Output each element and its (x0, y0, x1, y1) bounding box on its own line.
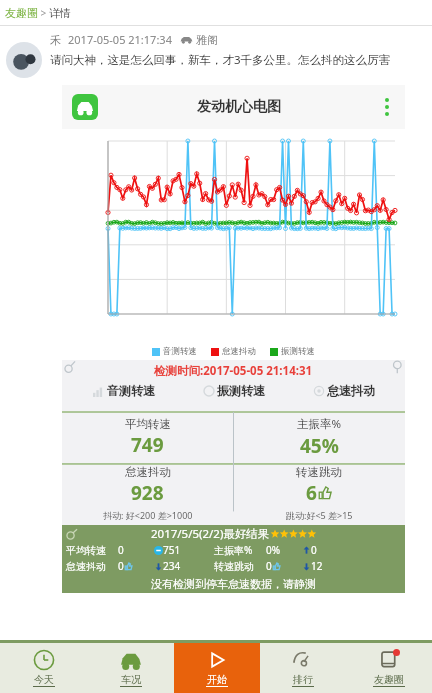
staticText: 请问大神，这是怎么回事，新车，才3千多公里。怎么抖的这么厉害 (50, 52, 391, 68)
staticText: 751 (163, 543, 181, 557)
staticText: 6 (306, 480, 317, 506)
staticText: 0 (118, 543, 124, 557)
staticText: > (38, 6, 49, 20)
staticText: 开始 (207, 673, 227, 686)
staticText: 0 (118, 559, 124, 573)
staticText: 主振率% (297, 416, 342, 432)
staticText: 2017-05-05 21:17:34 (68, 32, 172, 47)
staticText: 振测转速 (217, 383, 265, 398)
staticText: 平均转速 (66, 544, 118, 557)
staticText: 0 (266, 559, 272, 573)
staticText: 今天 (34, 673, 54, 686)
staticText: 0 (311, 543, 317, 557)
staticText: 234 (163, 559, 181, 573)
staticText: 928 (131, 480, 164, 506)
staticText: 排行 (293, 673, 313, 686)
staticText: 749 (131, 432, 164, 458)
button[interactable]: 友趣圈 (346, 643, 432, 693)
staticText: 怠速抖动 (222, 346, 256, 357)
staticText: 跳动:好<5 差>15 (286, 509, 353, 521)
button[interactable]: Avatar (6, 42, 42, 78)
button[interactable]: 开始 (174, 643, 260, 693)
staticText: 0% (266, 543, 281, 557)
staticText: 振测转速 (281, 346, 315, 357)
staticText: 转速跳动 (214, 560, 266, 573)
button[interactable]: 车况 (87, 643, 174, 693)
staticText: 车况 (121, 673, 141, 686)
button[interactable]: More options (379, 98, 395, 116)
staticText: 音测转速 (107, 383, 155, 398)
staticText: 怠速抖动 (125, 465, 171, 479)
button[interactable]: 主振率% (233, 412, 405, 462)
button[interactable]: 怠速抖动 (289, 383, 399, 398)
staticText: 友趣圈 (5, 6, 38, 20)
button[interactable]: 排行 (260, 643, 346, 693)
staticText: 详情 (49, 6, 71, 20)
staticText: 2017/5/5(2/2)最好结果 (151, 526, 270, 542)
staticText: 12 (311, 559, 323, 573)
staticText: 主振率% (214, 543, 266, 557)
button[interactable]: 音测转速 (68, 383, 179, 398)
staticText: 雅阁 (196, 33, 218, 47)
button[interactable]: 今天 (0, 643, 87, 693)
button[interactable]: 转速跳动 (233, 462, 405, 509)
staticText: 怠速抖动 (327, 383, 375, 398)
staticText: 没有检测到停车怠速数据，请静测 (151, 577, 316, 591)
button[interactable]: 振测转速 (179, 383, 289, 398)
button[interactable]: 怠速抖动 (62, 462, 233, 509)
staticText: 友趣圈 (374, 673, 404, 686)
staticText: 抖动: 好<200 差>1000 (103, 509, 193, 521)
staticText: 禾 (50, 33, 61, 47)
staticText: 发动机心电图 (197, 98, 281, 116)
staticText: 转速跳动 (296, 465, 342, 479)
staticText: 检测时间:2017-05-05 21:14:31 (154, 363, 313, 379)
staticText: 怠速抖动 (66, 560, 118, 573)
staticText: 音测转速 (163, 346, 197, 357)
button[interactable]: 平均转速 (62, 412, 233, 462)
staticText: 平均转速 (125, 417, 171, 431)
staticText: 45% (300, 433, 339, 459)
